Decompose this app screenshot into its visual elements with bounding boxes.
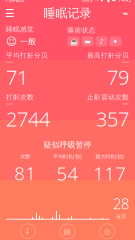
staticText: 最大时长(秒) xyxy=(95,153,124,160)
staticText: ☕ xyxy=(69,38,77,45)
staticText: 14:45 xyxy=(118,0,131,3)
staticText: 2744 xyxy=(6,105,50,132)
staticText: 最高打鼾分贝 xyxy=(87,51,129,60)
staticText: ⏱ xyxy=(95,0,99,2)
staticText: 54 xyxy=(56,161,78,186)
staticText: 0K/s xyxy=(82,0,93,3)
staticText: 睡前状态 xyxy=(67,26,95,34)
staticText: 睡眠记录 xyxy=(43,6,91,21)
staticText: 睡眠感觉 xyxy=(6,25,34,33)
staticText: ▮ xyxy=(107,0,110,3)
staticText: 分贝 xyxy=(116,213,126,220)
staticText: 71 xyxy=(6,64,28,90)
staticText: ▰ xyxy=(112,0,116,3)
button[interactable]: Settings xyxy=(100,224,115,239)
button[interactable]: Share xyxy=(115,4,135,22)
staticText: 平均时长(秒) xyxy=(53,153,82,160)
staticText: 疑似呼吸暂停 xyxy=(43,140,91,150)
staticText: 81 xyxy=(14,161,36,185)
staticText: ◤ xyxy=(101,0,105,3)
staticText: 次数 xyxy=(20,153,30,160)
staticText: ✦ xyxy=(112,38,118,45)
staticText: 79 xyxy=(107,64,129,90)
staticText: 28 xyxy=(113,194,129,213)
staticText: 117 xyxy=(93,161,126,186)
staticText: 打鼾次数 xyxy=(6,93,34,101)
staticText: 平均打鼾分贝 xyxy=(6,51,48,60)
button[interactable]: Report xyxy=(60,224,75,239)
staticText: ☺ xyxy=(6,35,17,47)
staticText: ▤ xyxy=(63,227,71,236)
staticText: ▬ xyxy=(84,38,90,45)
staticText: ◎ xyxy=(104,227,111,236)
staticText: ↓ xyxy=(24,227,31,236)
staticText: 止鼾震动次数 xyxy=(87,93,129,101)
button[interactable]: Menu xyxy=(0,4,20,22)
staticText: 中国电信 xyxy=(4,0,24,3)
staticText: 一般 xyxy=(20,37,36,46)
button[interactable]: Download xyxy=(20,224,35,239)
staticText: ☰ xyxy=(5,7,15,19)
staticText: ⌁ xyxy=(122,7,128,19)
staticText: ♪ xyxy=(99,38,103,45)
staticText: 357 xyxy=(96,105,129,132)
